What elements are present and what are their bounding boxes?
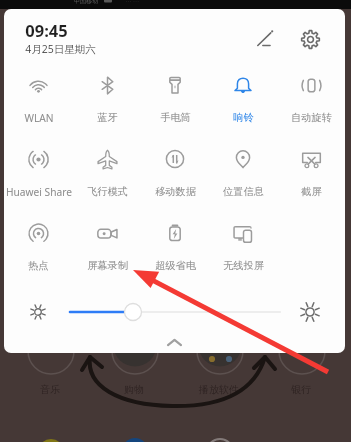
button[interactable]: Collapse xyxy=(4,331,345,353)
staticText: 自动旋转 xyxy=(291,111,332,124)
staticText: 09:45 xyxy=(25,19,68,41)
staticText: 位置信息 xyxy=(223,185,264,198)
staticText: 截屏 xyxy=(301,185,322,198)
staticText: 手电筒 xyxy=(160,111,191,124)
staticText: 购物 xyxy=(124,383,144,396)
staticText: 响铃 xyxy=(233,111,254,124)
staticText: 屏幕录制 xyxy=(87,259,128,272)
button[interactable]: 响铃 xyxy=(209,71,277,124)
button[interactable]: 移动数据 xyxy=(141,145,209,198)
staticText: 4月25日星期六 xyxy=(25,42,96,56)
button[interactable]: Huawei Share xyxy=(4,145,73,199)
staticText: ⋯ ⋯ xyxy=(125,0,139,5)
staticText: 飞行模式 xyxy=(87,185,128,198)
staticText: 超级省电 xyxy=(155,259,196,272)
staticText: 银行 xyxy=(291,383,311,396)
button[interactable]: 手电筒 xyxy=(141,71,209,124)
button[interactable]: 截屏 xyxy=(277,145,345,198)
staticText: 播放软件 xyxy=(199,383,239,396)
staticText: 热点 xyxy=(28,259,49,272)
button[interactable]: 自动旋转 xyxy=(277,71,345,124)
staticText: 蓝牙 xyxy=(97,111,118,124)
button[interactable]: 屏幕录制 xyxy=(73,219,141,272)
button[interactable]: Brightness xyxy=(4,293,345,331)
staticText: 中国移动 xyxy=(74,0,98,5)
button[interactable]: Edit xyxy=(250,24,280,54)
button[interactable]: 无线投屏 xyxy=(209,219,277,272)
button[interactable]: 飞行模式 xyxy=(73,145,141,198)
button[interactable]: 热点 xyxy=(4,219,73,272)
staticText: 音乐 xyxy=(40,383,60,396)
staticText: 无线投屏 xyxy=(223,259,264,272)
button[interactable]: WLAN xyxy=(4,71,73,125)
button[interactable]: 超级省电 xyxy=(141,219,209,272)
staticText: 移动数据 xyxy=(155,185,196,198)
button[interactable]: Settings xyxy=(295,24,325,54)
button[interactable]: 蓝牙 xyxy=(73,71,141,124)
staticText: WLAN xyxy=(24,111,54,125)
button[interactable]: 位置信息 xyxy=(209,145,277,198)
staticText: Huawei Share xyxy=(6,185,72,199)
